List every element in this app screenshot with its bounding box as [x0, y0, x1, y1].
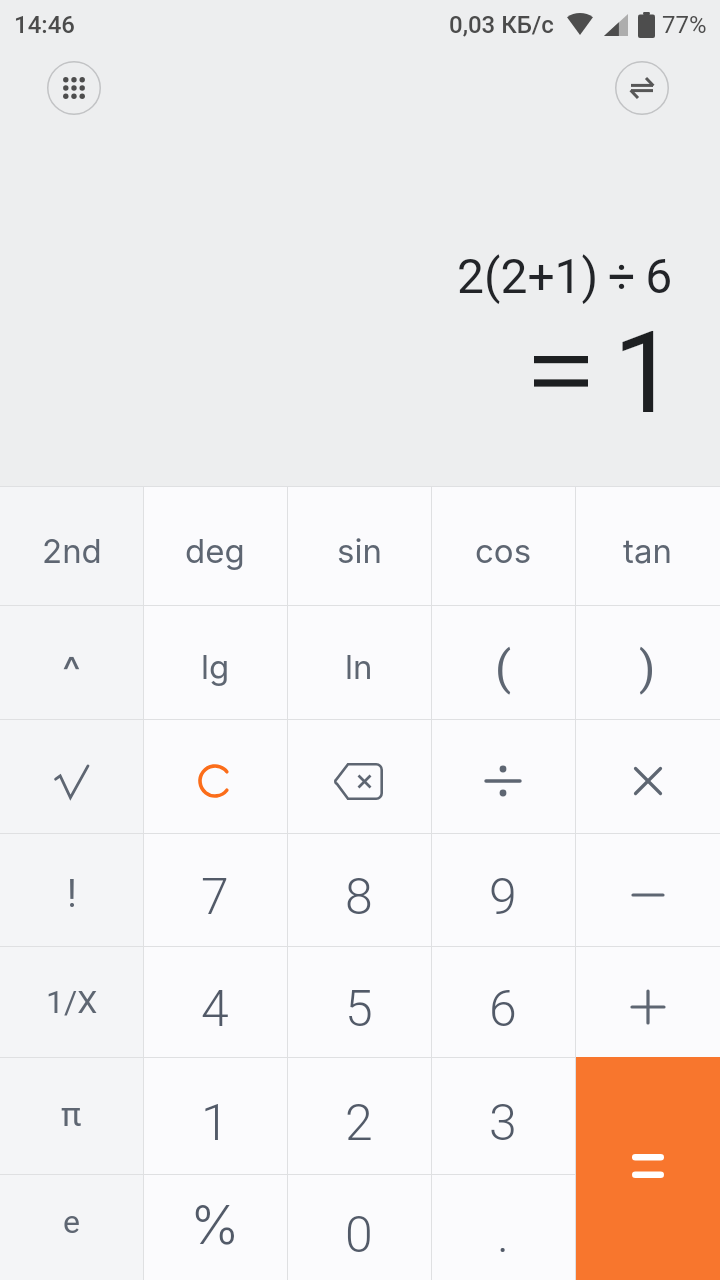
button[interactable]: lg — [143, 605, 287, 719]
button[interactable]: 5 — [287, 946, 431, 1057]
staticText: ( — [495, 640, 512, 695]
button[interactable]: 7 — [143, 833, 287, 946]
staticText: 7 — [201, 868, 229, 927]
staticText: ln — [345, 647, 373, 687]
button[interactable]: % — [143, 1174, 287, 1280]
button[interactable] — [575, 946, 720, 1057]
button[interactable]: ) — [575, 605, 720, 719]
button[interactable] — [431, 719, 575, 833]
staticText: ! — [67, 872, 77, 917]
button[interactable]: π — [0, 1057, 143, 1174]
button[interactable]: 1/X — [0, 946, 143, 1057]
staticText: 0 — [345, 1206, 373, 1265]
button[interactable]: 8 — [287, 833, 431, 946]
button[interactable]: tan — [575, 486, 720, 605]
button[interactable] — [575, 1057, 720, 1280]
staticText: ) — [639, 640, 656, 695]
staticText: 6 — [489, 980, 517, 1039]
staticText: 0,03 КБ/с — [449, 11, 554, 39]
staticText: π — [61, 1094, 82, 1134]
staticText: 2 — [345, 1094, 373, 1153]
staticText: 8 — [345, 868, 373, 927]
button[interactable]: 6 — [431, 946, 575, 1057]
staticText: sin — [337, 531, 382, 571]
button[interactable]: ! — [0, 833, 143, 946]
staticText: 1/X — [46, 983, 98, 1021]
button[interactable] — [287, 719, 431, 833]
staticText: 77% — [662, 11, 707, 39]
button[interactable]: e — [0, 1174, 143, 1280]
button[interactable] — [575, 719, 720, 833]
button[interactable] — [47, 61, 101, 115]
staticText: 4 — [201, 980, 229, 1039]
button[interactable]: sin — [287, 486, 431, 605]
staticText: 5 — [345, 980, 373, 1039]
staticText: 1 — [201, 1094, 229, 1153]
staticText: 2(2+1) ÷ 6 — [457, 248, 673, 304]
button[interactable] — [615, 61, 669, 115]
staticText: deg — [185, 531, 245, 571]
button[interactable]: 3 — [431, 1057, 575, 1174]
staticText: 9 — [489, 868, 517, 927]
button[interactable]: deg — [143, 486, 287, 605]
button[interactable]: 2nd — [0, 486, 143, 605]
button[interactable]: 4 — [143, 946, 287, 1057]
staticText: . — [497, 1206, 509, 1265]
button[interactable] — [0, 719, 143, 833]
button[interactable]: ^ — [0, 605, 143, 719]
button[interactable]: 1 — [143, 1057, 287, 1174]
staticText: tan — [623, 531, 672, 571]
button[interactable]: 9 — [431, 833, 575, 946]
staticText: e — [63, 1203, 80, 1241]
staticText: 2nd — [42, 531, 102, 571]
staticText: ^ — [62, 646, 81, 694]
button[interactable]: cos — [431, 486, 575, 605]
staticText: 3 — [489, 1094, 517, 1153]
button[interactable]: ln — [287, 605, 431, 719]
button[interactable]: 2 — [287, 1057, 431, 1174]
button[interactable] — [143, 719, 287, 833]
button[interactable]: 0 — [287, 1174, 431, 1280]
staticText: lg — [201, 647, 230, 687]
staticText: 1 — [613, 307, 677, 439]
button[interactable]: ( — [431, 605, 575, 719]
button[interactable] — [575, 833, 720, 946]
staticText: cos — [475, 531, 532, 571]
button[interactable]: . — [431, 1174, 575, 1280]
staticText: 14:46 — [14, 11, 75, 39]
staticText: % — [190, 1193, 240, 1257]
